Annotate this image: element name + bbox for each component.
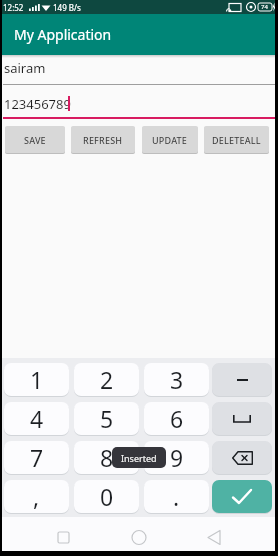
staticText: 1: [30, 364, 44, 395]
staticText: 6: [170, 403, 184, 434]
staticText: UPDATE: [152, 134, 188, 146]
button[interactable]: 9: [144, 441, 209, 474]
button[interactable]: 0: [74, 480, 139, 513]
button[interactable]: 1: [4, 363, 69, 396]
button[interactable]: REFRESH: [71, 126, 135, 153]
button[interactable]: [212, 402, 272, 435]
staticText: REFRESH: [83, 134, 123, 146]
staticText: .: [173, 481, 180, 512]
staticText: DELETEALL: [212, 134, 261, 146]
button[interactable]: [212, 441, 272, 474]
staticText: ,: [33, 481, 40, 512]
button[interactable]: 2: [74, 363, 139, 396]
button[interactable]: UPDATE: [142, 126, 198, 153]
staticText: 4: [30, 403, 44, 434]
staticText: My Application: [14, 25, 112, 44]
button[interactable]: [2, 89, 275, 119]
button[interactable]: 4: [4, 402, 69, 435]
button[interactable]: 7: [4, 441, 69, 474]
button[interactable]: .: [144, 480, 209, 513]
staticText: 74: [261, 3, 268, 11]
staticText: 149 B/s: [53, 2, 81, 13]
button[interactable]: [109, 517, 169, 551]
staticText: 7: [30, 442, 44, 473]
button[interactable]: 6: [144, 402, 209, 435]
staticText: 2: [100, 364, 114, 395]
staticText: 5: [100, 403, 114, 434]
button[interactable]: 5: [74, 402, 139, 435]
button[interactable]: [212, 480, 272, 513]
staticText: 0: [100, 481, 114, 512]
staticText: 3: [170, 364, 184, 395]
staticText: 8: [100, 442, 114, 473]
button[interactable]: [178, 517, 238, 551]
staticText: 123456789: [4, 95, 71, 113]
button[interactable]: DELETEALL: [204, 126, 269, 153]
button[interactable]: 8: [74, 441, 139, 474]
staticText: Inserted: [121, 452, 157, 464]
staticText: SAVE: [24, 134, 46, 146]
staticText: 9: [170, 442, 184, 473]
button[interactable]: [40, 517, 100, 551]
button[interactable]: 3: [144, 363, 209, 396]
button[interactable]: ,: [4, 480, 69, 513]
staticText: 12:52: [3, 2, 24, 13]
button[interactable]: [212, 363, 272, 396]
button[interactable]: [2, 56, 275, 86]
staticText: sairam: [4, 59, 46, 77]
button[interactable]: SAVE: [5, 126, 65, 153]
